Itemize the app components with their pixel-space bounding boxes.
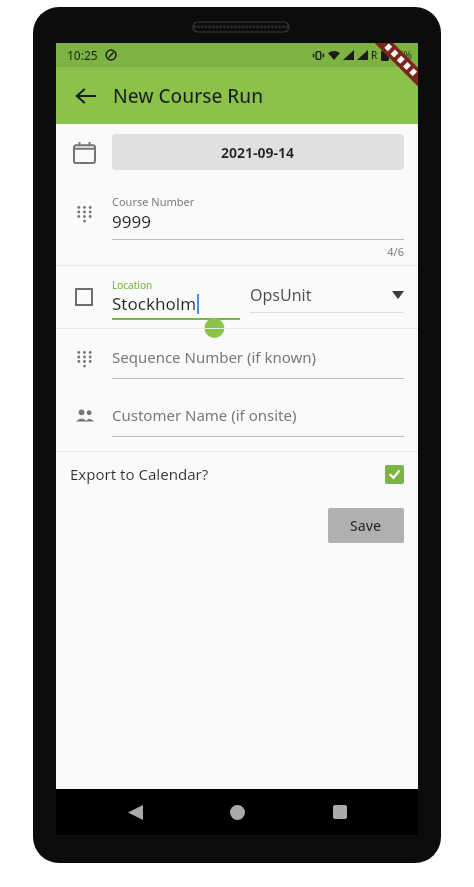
staticText: Location <box>112 278 153 292</box>
button[interactable]: Save <box>328 508 404 543</box>
staticText: OpsUnit <box>250 284 392 306</box>
button[interactable]: Back <box>111 789 159 835</box>
staticText: Export to Calendar? <box>70 464 385 484</box>
button[interactable]: Back <box>65 75 107 117</box>
staticText: R <box>371 48 378 62</box>
staticText: 2021-09-14 <box>221 143 295 162</box>
button[interactable]: 2021-09-14 <box>112 134 404 170</box>
staticText: Stockholm <box>112 292 197 315</box>
staticText: Save <box>350 516 382 535</box>
button[interactable]: Home <box>213 789 261 835</box>
button[interactable]: Export to Calendar? <box>56 452 418 496</box>
button[interactable]: Sequence Number (if known) <box>112 329 404 379</box>
button[interactable]: Toggle location <box>75 288 93 306</box>
button[interactable]: OpsUnit <box>250 266 404 313</box>
staticText: Course Number <box>112 194 195 209</box>
staticText: New Course Run <box>113 83 264 109</box>
staticText: Sequence Number (if known) <box>112 347 317 367</box>
button[interactable]: Customer Name (if onsite) <box>112 387 404 437</box>
staticText: Customer Name (if onsite) <box>112 405 297 425</box>
staticText: 9999 <box>112 210 151 233</box>
button[interactable]: Recent apps <box>316 789 364 835</box>
staticText: 86% <box>392 48 412 62</box>
staticText: 10:25 <box>67 47 98 63</box>
staticText: 4/6 <box>112 244 404 259</box>
